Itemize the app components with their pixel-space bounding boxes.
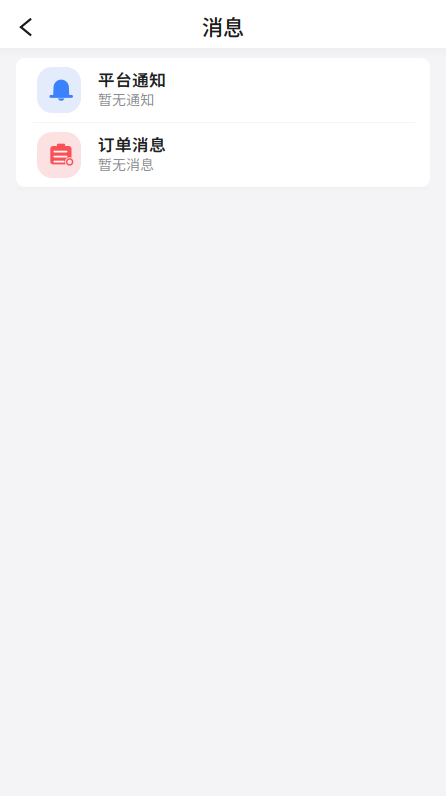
staticText: 订单消息: [98, 132, 166, 156]
staticText: 暂无通知: [98, 89, 154, 109]
button[interactable]: 订单消息: [16, 123, 430, 187]
staticText: 暂无消息: [98, 154, 154, 174]
button[interactable]: 平台通知: [16, 58, 430, 122]
staticText: 消息: [202, 11, 244, 41]
staticText: 平台通知: [98, 67, 166, 91]
button[interactable]: Back: [0, 0, 46, 48]
